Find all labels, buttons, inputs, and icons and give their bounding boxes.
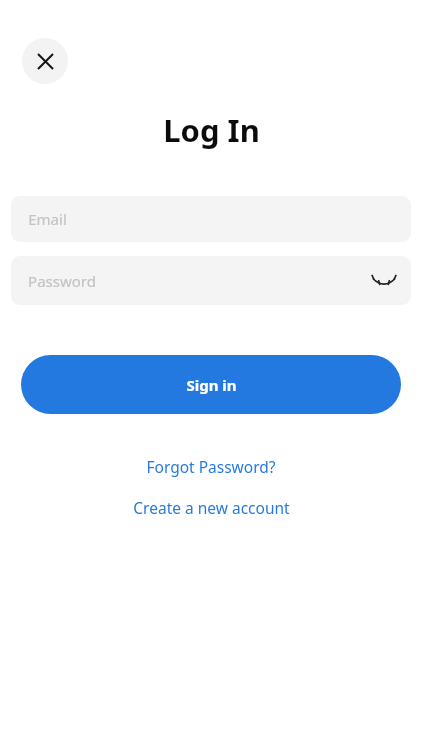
staticText: Password <box>28 271 96 291</box>
button[interactable]: Sign in <box>21 355 401 414</box>
button[interactable]: Forgot Password? <box>146 456 276 477</box>
button[interactable]: Show password <box>368 265 400 297</box>
staticText: Create a new account <box>133 497 290 518</box>
staticText: Forgot Password? <box>146 456 276 477</box>
button[interactable]: Create a new account <box>133 497 290 518</box>
staticText: Log In <box>163 109 260 151</box>
button[interactable]: Email <box>11 196 411 242</box>
button[interactable]: Password <box>11 256 411 305</box>
staticText: Email <box>28 209 67 229</box>
staticText: Sign in <box>186 375 237 395</box>
button[interactable]: Close <box>22 38 68 84</box>
